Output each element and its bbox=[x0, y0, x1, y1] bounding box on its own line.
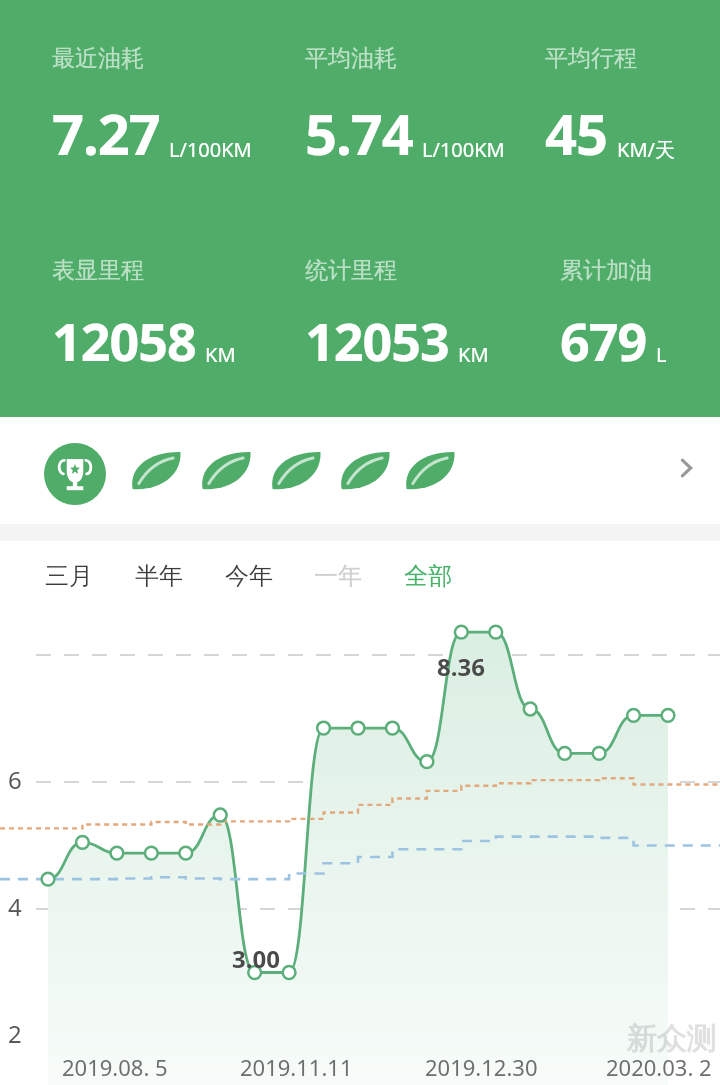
staticText: 12058 bbox=[52, 305, 196, 376]
staticText: 全部 bbox=[404, 561, 452, 591]
staticText: 6 bbox=[8, 763, 22, 796]
staticText: 累计加油 bbox=[560, 256, 652, 285]
staticText: 2 bbox=[8, 1017, 22, 1050]
staticText: 平均行程 bbox=[545, 44, 637, 73]
staticText: 45 bbox=[545, 95, 608, 171]
staticText: KM bbox=[458, 341, 489, 368]
staticText: 2019.12.30 bbox=[425, 1052, 538, 1082]
staticText: L/100KM bbox=[422, 136, 505, 163]
staticText: 2020.03. 2 bbox=[606, 1052, 712, 1082]
button[interactable]: 今年 bbox=[210, 550, 288, 602]
button[interactable]: 查看更多成就 bbox=[664, 446, 708, 490]
staticText: L/100KM bbox=[169, 136, 252, 163]
staticText: 4 bbox=[8, 890, 22, 923]
staticText: 3.00 bbox=[232, 942, 280, 975]
staticText: 新众测 bbox=[626, 1020, 716, 1058]
staticText: 今年 bbox=[225, 561, 273, 591]
staticText: 679 bbox=[560, 305, 647, 376]
staticText: 12053 bbox=[305, 305, 449, 376]
staticText: L bbox=[656, 341, 667, 368]
button[interactable]: 三月 bbox=[30, 550, 108, 602]
staticText: 平均油耗 bbox=[305, 44, 397, 73]
button[interactable]: 全部 bbox=[389, 550, 467, 602]
staticText: 2019.08. 5 bbox=[62, 1052, 168, 1082]
staticText: KM/天 bbox=[617, 136, 675, 163]
button[interactable] bbox=[0, 417, 720, 524]
staticText: 三月 bbox=[45, 561, 93, 591]
staticText: 7.27 bbox=[52, 95, 160, 171]
button[interactable]: 成就徽章 bbox=[44, 443, 106, 505]
button[interactable]: 一年 bbox=[299, 550, 377, 602]
staticText: 一年 bbox=[314, 561, 362, 591]
staticText: 5.74 bbox=[305, 95, 413, 171]
staticText: 统计里程 bbox=[305, 256, 397, 285]
staticText: 最近油耗 bbox=[52, 44, 144, 73]
staticText: 8.36 bbox=[437, 650, 485, 683]
staticText: 2019.11.11 bbox=[240, 1052, 353, 1082]
staticText: 表显里程 bbox=[52, 256, 144, 285]
staticText: 半年 bbox=[135, 561, 183, 591]
staticText: KM bbox=[205, 341, 236, 368]
button[interactable]: 半年 bbox=[120, 550, 198, 602]
